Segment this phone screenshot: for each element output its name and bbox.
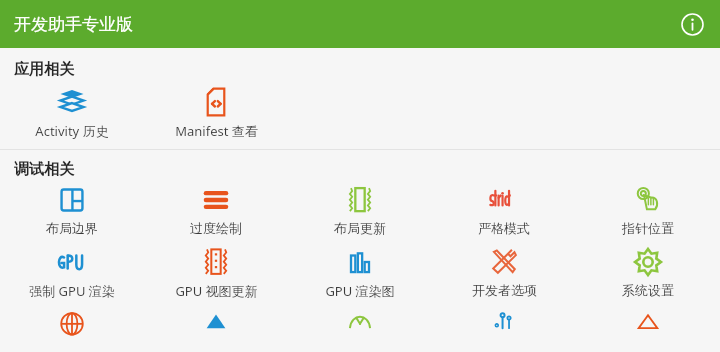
button[interactable]: 开发者选项: [432, 241, 576, 301]
staticText: 指针位置: [622, 220, 674, 236]
button[interactable]: 布局更新: [288, 179, 432, 239]
staticText: GPU 渲染图: [325, 282, 395, 300]
button[interactable]: Activity 历史: [0, 81, 144, 143]
staticText: 强制 GPU 渲染: [29, 282, 115, 300]
staticText: 开发助手专业版: [14, 14, 133, 35]
button[interactable]: 网络: [0, 305, 144, 349]
staticText: 严格模式: [478, 220, 530, 236]
button[interactable]: 布局边界: [0, 179, 144, 239]
button[interactable]: 系统设置: [576, 241, 720, 301]
button[interactable]: 信息: [144, 305, 288, 349]
button[interactable]: 指针位置: [576, 179, 720, 239]
staticText: 调试相关: [14, 160, 74, 179]
button[interactable]: 过度绘制: [144, 179, 288, 239]
button[interactable]: 其他: [576, 305, 720, 349]
button[interactable]: 关于: [674, 6, 710, 42]
staticText: 布局边界: [46, 220, 98, 236]
staticText: 应用相关: [14, 60, 74, 79]
button[interactable]: GPU 渲染图: [288, 241, 432, 303]
button[interactable]: 动画: [288, 305, 432, 349]
staticText: 开发者选项: [472, 282, 537, 298]
staticText: 过度绘制: [190, 220, 242, 236]
button[interactable]: 严格模式: [432, 179, 576, 239]
staticText: Manifest 查看: [175, 122, 258, 140]
staticText: 布局更新: [334, 220, 386, 236]
button[interactable]: GPU 视图更新: [144, 241, 288, 303]
button[interactable]: 强制 GPU 渲染: [0, 241, 144, 303]
button[interactable]: Manifest 查看: [144, 81, 288, 143]
staticText: 系统设置: [622, 282, 674, 298]
button[interactable]: 定位: [432, 305, 576, 349]
staticText: GPU 视图更新: [175, 282, 258, 300]
staticText: Activity 历史: [35, 122, 109, 140]
